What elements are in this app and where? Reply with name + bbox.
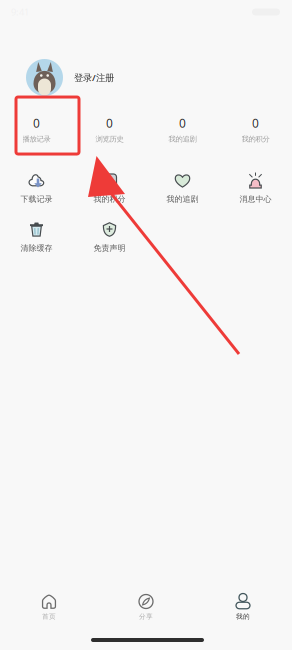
button[interactable]: 0 bbox=[219, 115, 292, 146]
staticText: 我的追剧 bbox=[168, 134, 196, 144]
staticText: 我的 bbox=[236, 612, 250, 621]
staticText: 我的积分 bbox=[93, 194, 125, 204]
button[interactable]: 下载记录 bbox=[0, 172, 73, 204]
button[interactable]: 登录/注册 bbox=[26, 59, 114, 96]
button[interactable]: 我的积分 bbox=[73, 172, 146, 204]
staticText: 浏览历史 bbox=[95, 134, 123, 144]
button[interactable]: 0 bbox=[146, 115, 219, 146]
staticText: 免责声明 bbox=[93, 243, 125, 253]
staticText: 登录/注册 bbox=[74, 71, 114, 84]
staticText: 我的追剧 bbox=[166, 194, 198, 204]
staticText: 我的积分 bbox=[241, 134, 269, 144]
button[interactable]: 免责声明 bbox=[73, 221, 146, 253]
staticText: 首页 bbox=[42, 612, 56, 621]
staticText: 0 bbox=[106, 115, 113, 131]
button[interactable]: 分享 bbox=[97, 592, 194, 622]
staticText: 消息中心 bbox=[239, 194, 271, 204]
button[interactable]: 我的 bbox=[194, 592, 291, 622]
staticText: 清除缓存 bbox=[20, 243, 52, 253]
button[interactable]: 我的追剧 bbox=[146, 172, 219, 204]
staticText: 下载记录 bbox=[20, 194, 52, 204]
staticText: 0 bbox=[179, 115, 186, 131]
button[interactable]: 首页 bbox=[0, 592, 97, 622]
staticText: 播放记录 bbox=[22, 134, 50, 144]
button[interactable]: 0 bbox=[73, 115, 146, 146]
staticText: 0 bbox=[252, 115, 259, 131]
staticText: 分享 bbox=[139, 612, 153, 621]
button[interactable]: 0 bbox=[0, 115, 73, 146]
staticText: 0 bbox=[33, 115, 40, 131]
button[interactable]: 消息中心 bbox=[219, 172, 292, 204]
button[interactable]: 清除缓存 bbox=[0, 221, 73, 253]
